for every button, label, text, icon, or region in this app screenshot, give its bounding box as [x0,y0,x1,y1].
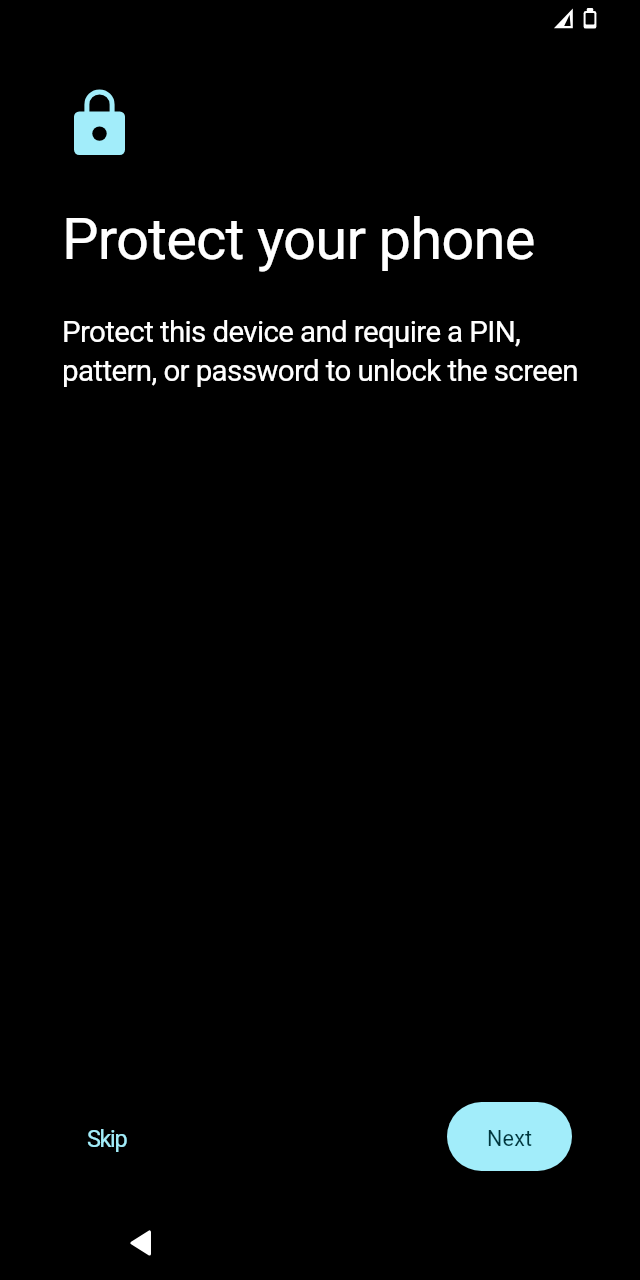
staticText: Skip [87,1125,127,1153]
button[interactable]: Back [111,1213,171,1273]
staticText: Protect your phone [62,205,622,273]
staticText: Next [487,1126,533,1151]
staticText: Protect this device and require a PIN, p… [62,315,602,388]
button[interactable]: Skip [67,1111,147,1167]
button[interactable]: Next [447,1102,572,1171]
